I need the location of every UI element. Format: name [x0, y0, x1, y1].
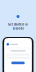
button[interactable]: [11, 62, 25, 64]
staticText: seconds: [12, 27, 23, 30]
staticText: Get started in: [8, 23, 28, 26]
